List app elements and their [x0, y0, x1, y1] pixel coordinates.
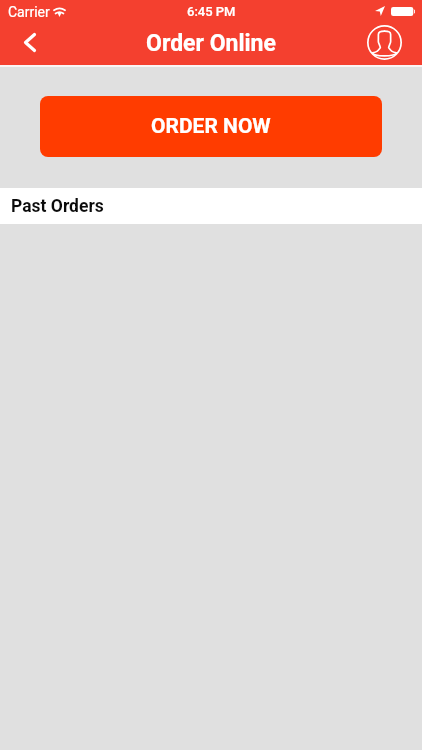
staticText: Order Online — [146, 30, 276, 57]
staticText: ORDER NOW — [151, 114, 271, 139]
staticText: 6:45 PM — [187, 4, 236, 19]
button[interactable]: Back — [8, 20, 52, 64]
button[interactable]: Profile — [364, 22, 404, 62]
staticText: Past Orders — [11, 196, 104, 217]
button[interactable]: ORDER NOW — [40, 96, 382, 157]
staticText: Carrier — [8, 4, 50, 20]
